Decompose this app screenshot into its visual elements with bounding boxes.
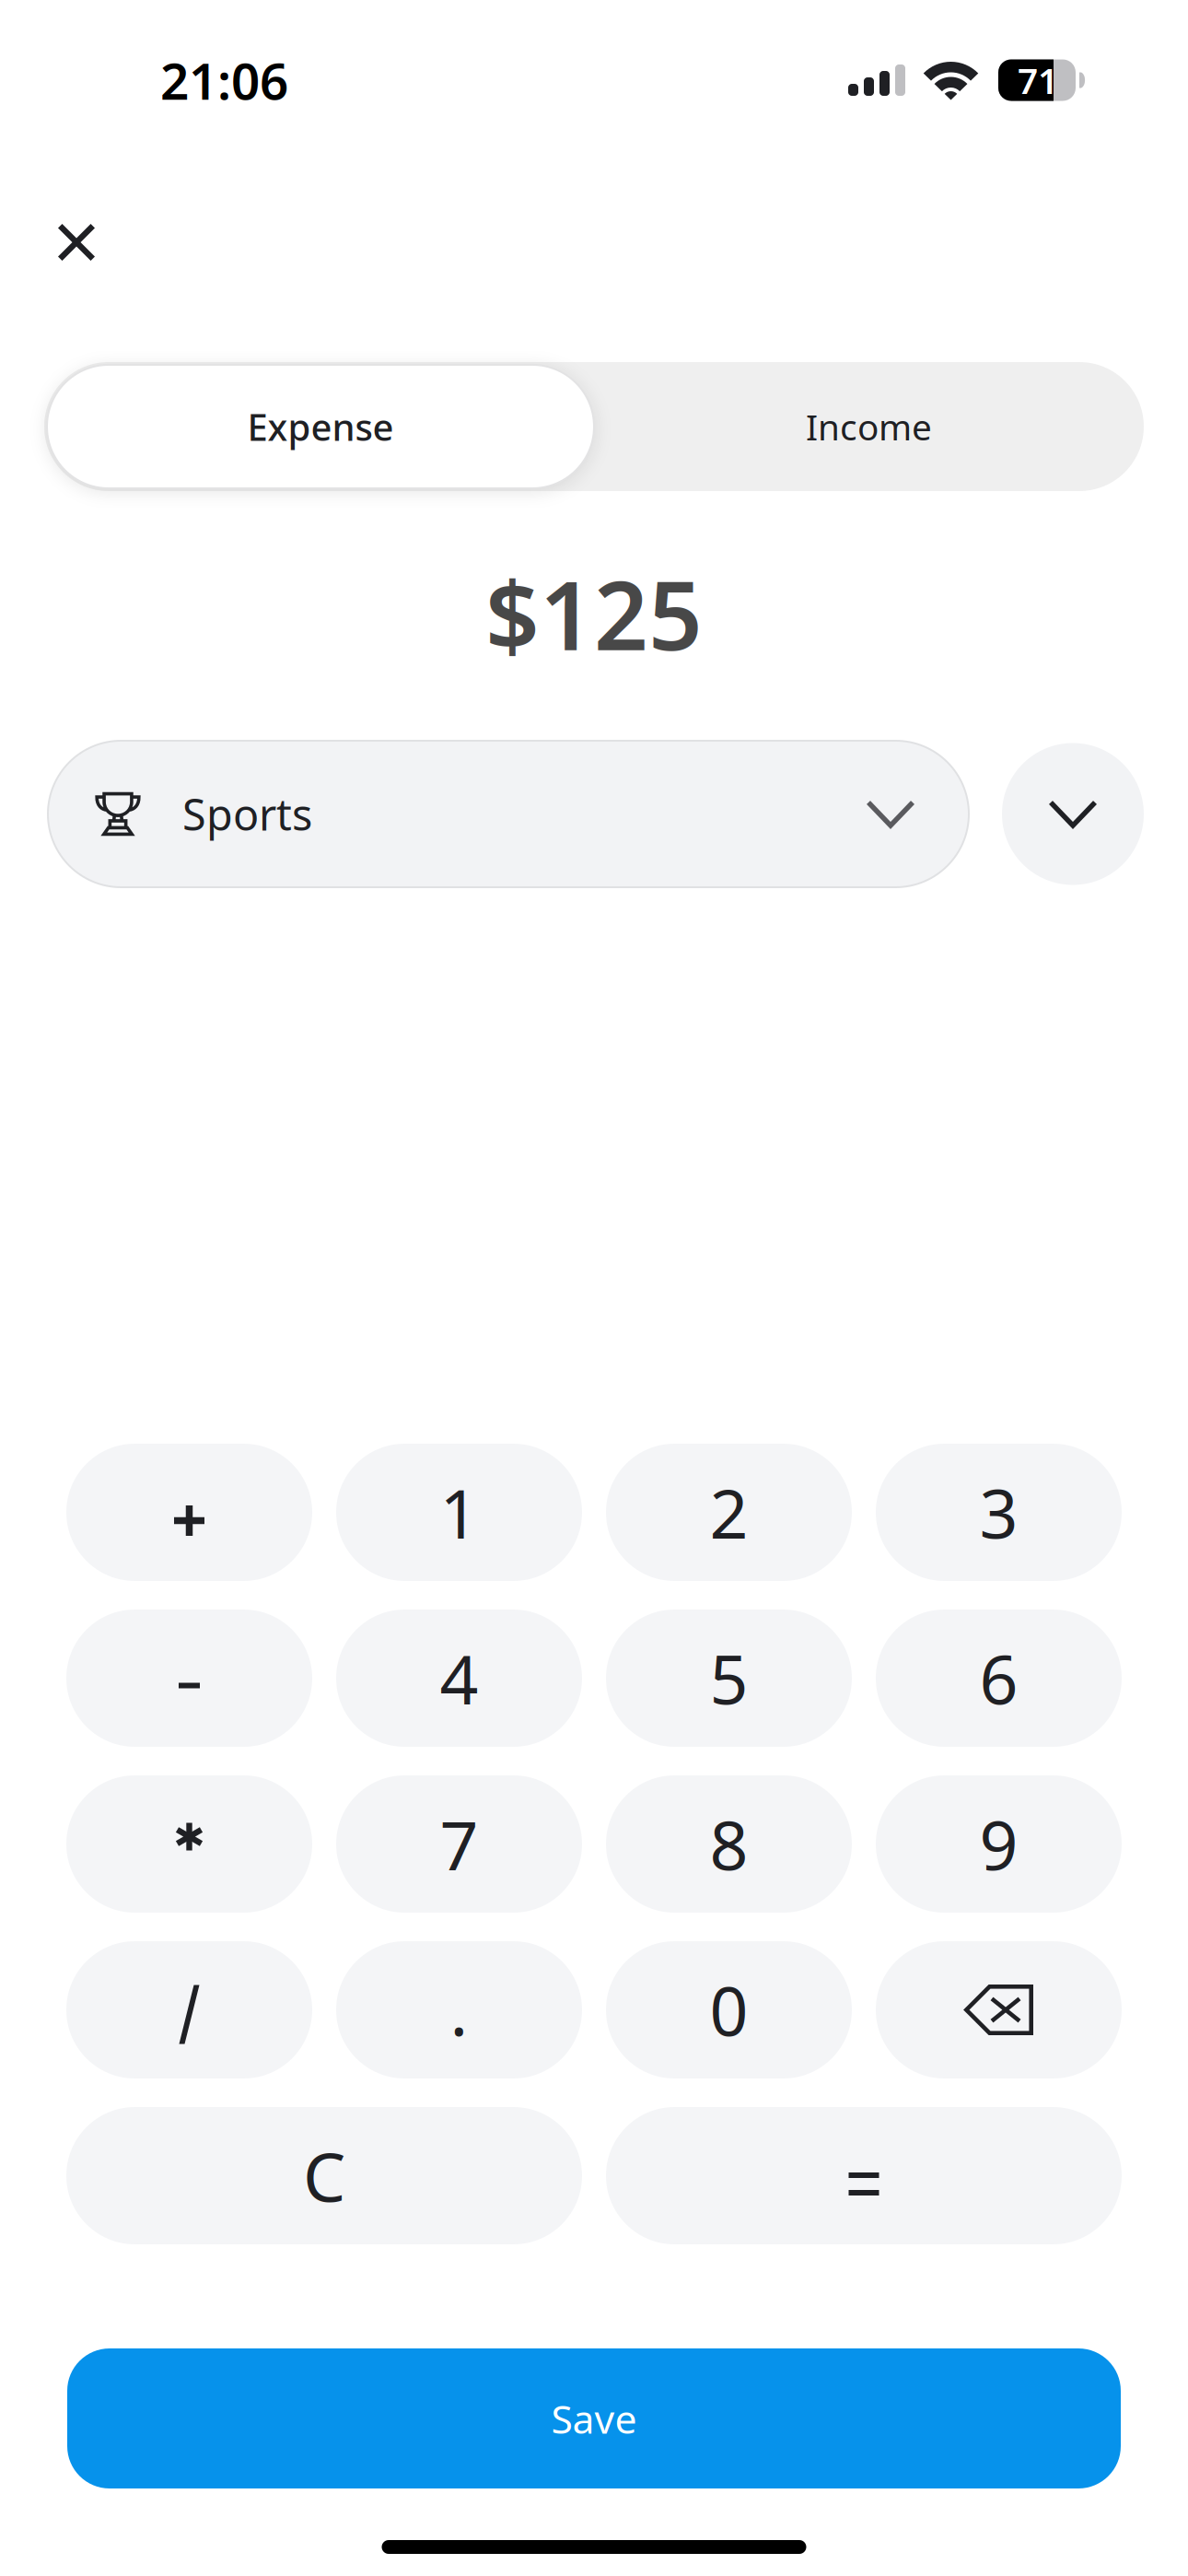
button[interactable]: 5 <box>606 1610 852 1747</box>
button[interactable]: . <box>336 1941 582 2078</box>
button[interactable]: Delete <box>876 1941 1122 2078</box>
button[interactable]: Divide <box>66 1941 312 2078</box>
staticText: Income <box>806 403 932 450</box>
staticText: 9 <box>979 1799 1018 1889</box>
button[interactable]: 6 <box>876 1610 1122 1747</box>
staticText: 5 <box>710 1633 748 1723</box>
button[interactable]: 1 <box>336 1444 582 1581</box>
staticText: 1 <box>440 1467 478 1557</box>
staticText: $125 <box>485 551 703 676</box>
button[interactable]: 3 <box>876 1444 1122 1581</box>
button[interactable]: 8 <box>606 1775 852 1913</box>
staticText: 4 <box>440 1633 478 1723</box>
button[interactable]: Sports <box>48 741 969 887</box>
button[interactable]: Income <box>594 362 1144 491</box>
button[interactable]: 2 <box>606 1444 852 1581</box>
staticText: 71 <box>1018 56 1058 104</box>
button[interactable]: 4 <box>336 1610 582 1747</box>
staticText: . <box>450 1965 468 2055</box>
button[interactable]: Save <box>67 2348 1121 2488</box>
staticText: Expense <box>247 402 394 451</box>
staticText: 6 <box>979 1633 1018 1723</box>
button[interactable]: Close <box>26 192 127 293</box>
button[interactable]: Plus <box>66 1444 312 1581</box>
staticText: C <box>303 2131 345 2221</box>
staticText: 7 <box>440 1799 478 1889</box>
button[interactable]: Expense <box>44 362 594 491</box>
staticText: 8 <box>710 1799 748 1889</box>
button[interactable]: Minus <box>66 1610 312 1747</box>
button[interactable]: 0 <box>606 1941 852 2078</box>
button[interactable]: 9 <box>876 1775 1122 1913</box>
button[interactable]: Multiply <box>66 1775 312 1913</box>
staticText: Sports <box>182 785 312 843</box>
staticText: 21:06 <box>160 47 288 114</box>
staticText: 2 <box>710 1467 748 1557</box>
button[interactable]: Select category group <box>1002 743 1144 885</box>
button[interactable]: 7 <box>336 1775 582 1913</box>
staticText: Save <box>551 2392 637 2445</box>
staticText: 3 <box>979 1467 1018 1557</box>
button[interactable]: Equals <box>606 2107 1122 2244</box>
button[interactable]: C <box>66 2107 582 2244</box>
staticText: 0 <box>710 1965 748 2055</box>
